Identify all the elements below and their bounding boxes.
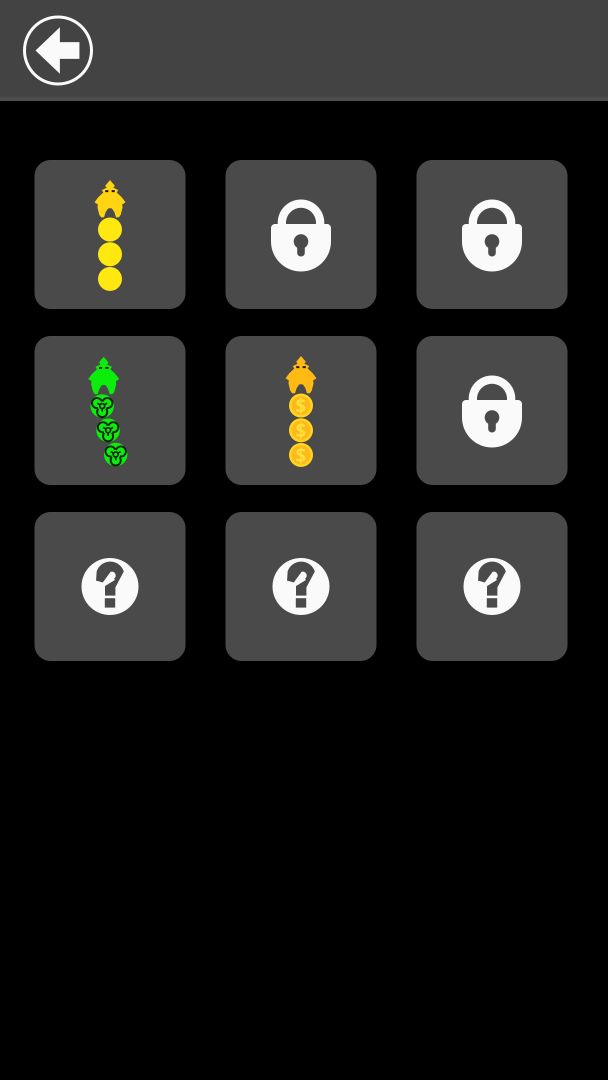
button[interactable]: Back [19,11,97,89]
button[interactable] [225,512,376,661]
button[interactable]: $ [225,336,376,485]
staticText: $ [295,418,306,443]
staticText: $ [295,443,306,467]
button[interactable] [416,160,567,309]
button[interactable] [34,512,185,661]
staticText: $ [295,393,306,418]
button[interactable] [34,336,185,485]
button[interactable] [416,512,567,661]
button[interactable] [34,160,185,309]
button[interactable] [225,160,376,309]
button[interactable] [416,336,567,485]
